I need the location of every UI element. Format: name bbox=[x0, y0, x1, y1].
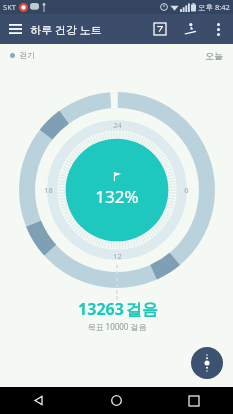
staticText: 18 bbox=[44, 185, 53, 195]
staticText: 오늘 bbox=[205, 50, 223, 61]
button[interactable]: 걷기 bbox=[10, 50, 35, 60]
staticText: 12 bbox=[113, 251, 122, 261]
button[interactable]: Calendar bbox=[145, 14, 175, 44]
staticText: 6 bbox=[184, 185, 189, 195]
staticText: 24 bbox=[113, 120, 122, 130]
button[interactable]: 오늘 bbox=[205, 50, 223, 61]
button[interactable]: More options bbox=[205, 16, 231, 42]
staticText: SKT bbox=[3, 2, 16, 12]
staticText: 걷기 bbox=[19, 50, 35, 60]
staticText: 13263 bbox=[76, 298, 126, 320]
button[interactable]: Back bbox=[0, 387, 77, 414]
button[interactable]: Add record bbox=[191, 347, 223, 379]
button[interactable]: Profile location bbox=[175, 14, 205, 44]
staticText: 하루 건강 노트 bbox=[30, 22, 102, 37]
staticText: 오후 8:42 bbox=[198, 2, 230, 12]
staticText: 걸음 bbox=[126, 300, 158, 320]
button[interactable]: Open navigation menu bbox=[0, 14, 30, 44]
staticText: 132% bbox=[95, 185, 139, 208]
staticText: 목표 10000 걸음 bbox=[87, 321, 147, 332]
button[interactable]: Home bbox=[77, 387, 155, 414]
button[interactable]: Recent apps bbox=[155, 387, 233, 414]
